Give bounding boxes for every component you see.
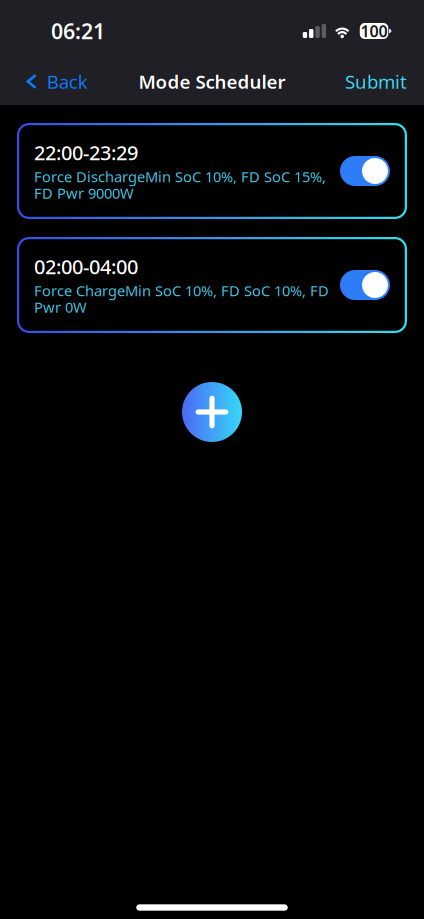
button[interactable]: 02:00-04:00	[17, 237, 407, 333]
button[interactable]: 22:00-23:29	[17, 123, 407, 219]
staticText: 02:00-04:00	[34, 253, 138, 280]
staticText: 22:00-23:29	[34, 139, 138, 166]
button[interactable]: Back	[0, 58, 102, 105]
staticText: Back	[47, 69, 88, 94]
staticText: Mode Scheduler	[138, 69, 285, 94]
staticText: Force ChargeMin SoC 10%, FD SoC 10%, FD …	[34, 281, 329, 317]
staticText: 100	[360, 20, 387, 42]
button[interactable]: Submit	[327, 58, 424, 105]
staticText: 06:21	[51, 17, 105, 45]
staticText: Force DischargeMin SoC 10%, FD SoC 15%, …	[34, 167, 326, 203]
button[interactable]: Add schedule	[182, 382, 242, 442]
staticText: Submit	[345, 69, 407, 94]
